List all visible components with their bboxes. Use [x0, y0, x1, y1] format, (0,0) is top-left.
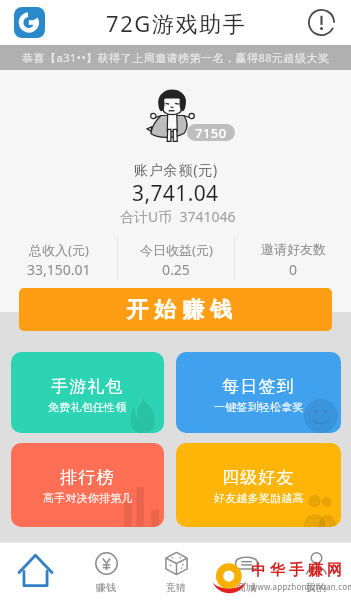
button[interactable]: 72G logo	[14, 7, 45, 38]
button[interactable]: 开始赚钱	[19, 288, 332, 331]
staticText: 四级好友	[222, 467, 295, 488]
staticText: 高手对决你排第几	[43, 491, 133, 505]
staticText: 邀请好友数	[261, 241, 326, 257]
button[interactable]: 排行榜	[11, 443, 164, 527]
staticText: 今日收益(元)	[140, 241, 213, 259]
staticText: 3,741.04	[132, 179, 219, 208]
button[interactable]: Notice	[308, 9, 335, 36]
staticText: 商城	[236, 581, 256, 594]
staticText: 33,150.01	[27, 260, 91, 279]
staticText: 我的	[306, 581, 326, 594]
staticText: 排行榜	[60, 467, 115, 488]
button[interactable]: 赚钱	[71, 542, 141, 600]
button[interactable]: 首页	[0, 542, 71, 600]
staticText: 7150	[195, 124, 227, 141]
button[interactable]: 竞猜	[141, 542, 211, 600]
button[interactable]: 每日签到	[176, 352, 341, 433]
staticText: 中华手赚网	[249, 561, 344, 580]
button[interactable]: 我的	[281, 542, 351, 600]
staticText: 账户余额(元)	[134, 160, 218, 179]
staticText: 恭喜【a31••】获得了上周邀请榜第一名，赢得88元超级大奖	[22, 50, 330, 65]
staticText: 0.25	[162, 260, 190, 279]
button[interactable]: 手游礼包	[11, 352, 164, 433]
button[interactable]: 恭喜【a31••】获得了上周邀请榜第一名，赢得88元超级大奖	[0, 45, 351, 70]
staticText: 开始赚钱	[123, 296, 235, 324]
staticText: 合计U币 3741046	[120, 207, 236, 226]
staticText: 一键签到轻松拿奖	[214, 400, 304, 414]
staticText: 每日签到	[222, 376, 295, 397]
staticText: 好友越多奖励越高	[214, 491, 304, 505]
button[interactable]: 商城	[211, 542, 281, 600]
button[interactable]: 今日收益(元)	[118, 237, 234, 281]
staticText: 赚钱	[96, 581, 116, 594]
staticText: www.appzhongzhuan.com	[251, 581, 351, 592]
staticText: 竞猜	[166, 581, 186, 594]
staticText: 手游礼包	[51, 376, 124, 397]
button[interactable]: 邀请好友数	[235, 237, 351, 281]
staticText: 72G游戏助手	[106, 8, 247, 38]
button[interactable]: 总收入(元)	[0, 237, 117, 281]
staticText: 总收入(元)	[29, 241, 89, 259]
staticText: 免费礼包任性领	[48, 400, 127, 414]
staticText: 0	[289, 260, 298, 279]
button[interactable]: 四级好友	[176, 443, 341, 527]
